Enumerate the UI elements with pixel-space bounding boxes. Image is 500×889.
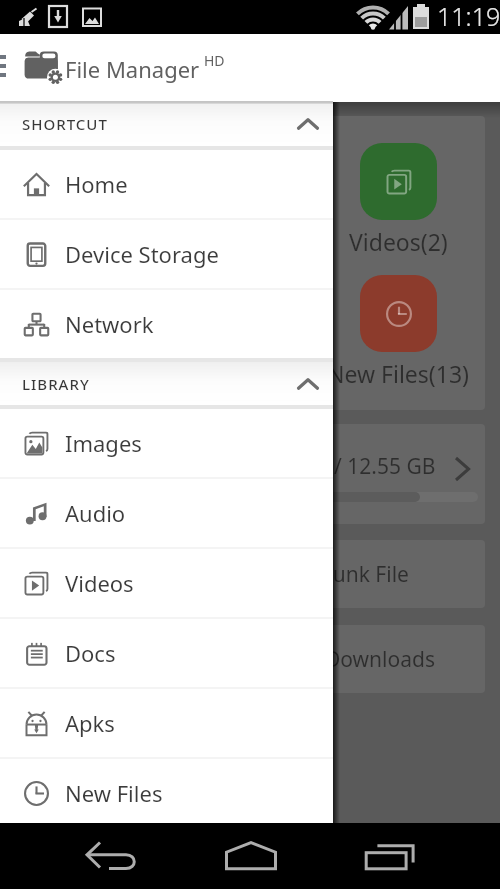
- button[interactable]: Docs: [0, 619, 333, 687]
- button[interactable]: Device Storage: [0, 220, 333, 288]
- staticText: Videos: [65, 568, 134, 598]
- staticText: SHORTCUT: [22, 114, 108, 134]
- staticText: Docs(0): [92, 358, 172, 389]
- staticText: Device Storage: [65, 239, 219, 269]
- button[interactable]: Open navigation drawer: [0, 43, 30, 93]
- button[interactable]: Collapse SHORTCUT: [285, 102, 333, 146]
- staticText: New Files(13): [327, 358, 469, 389]
- button[interactable]: Images: [0, 409, 333, 477]
- button[interactable]: Apks: [0, 689, 333, 757]
- staticText: 11:19: [437, 0, 500, 33]
- staticText: Home: [65, 169, 128, 199]
- staticText: Junk File: [327, 560, 409, 589]
- staticText: HD: [204, 51, 225, 70]
- button[interactable]: Network: [0, 290, 333, 358]
- button[interactable]: SHORTCUT: [0, 102, 333, 146]
- staticText: Network: [65, 309, 154, 339]
- button[interactable]: Apks(5): [170, 275, 360, 389]
- button[interactable]: Collapse LIBRARY: [285, 362, 333, 405]
- other: Storage details: [447, 454, 477, 484]
- staticText: Images: [65, 428, 142, 458]
- button[interactable]: / 12.55 GB: [15, 424, 485, 524]
- button[interactable]: New Files: [0, 759, 333, 827]
- staticText: Downloads: [325, 645, 435, 674]
- staticText: Docs: [65, 638, 116, 668]
- button[interactable]: Home: [0, 150, 333, 218]
- button[interactable]: Docs(0): [37, 275, 227, 389]
- button[interactable]: Junk File: [15, 540, 485, 608]
- staticText: Images(0): [78, 226, 186, 257]
- button[interactable]: Audio: [0, 479, 333, 547]
- staticText: Apks: [65, 708, 115, 738]
- button[interactable]: Videos(2): [15, 116, 485, 410]
- staticText: LIBRARY: [22, 374, 90, 394]
- button[interactable]: LIBRARY: [0, 362, 333, 405]
- staticText: Videos(2): [349, 226, 448, 257]
- button[interactable]: Home: [166, 823, 332, 889]
- button[interactable]: Images(0): [37, 143, 227, 257]
- button[interactable]: New Files(13): [303, 275, 485, 389]
- staticText: Apks(5): [225, 358, 305, 389]
- staticText: Audio: [65, 498, 126, 528]
- button[interactable]: Back: [0, 823, 166, 889]
- staticText: File Manager: [65, 54, 200, 84]
- button[interactable]: Recent apps: [332, 823, 500, 889]
- button[interactable]: Downloads: [15, 625, 485, 693]
- staticText: New Files: [65, 778, 163, 808]
- button[interactable]: Videos: [0, 549, 333, 617]
- button[interactable]: Audio(0): [170, 143, 360, 257]
- staticText: / 12.55 GB: [334, 452, 436, 481]
- button[interactable]: Videos(2): [303, 143, 485, 257]
